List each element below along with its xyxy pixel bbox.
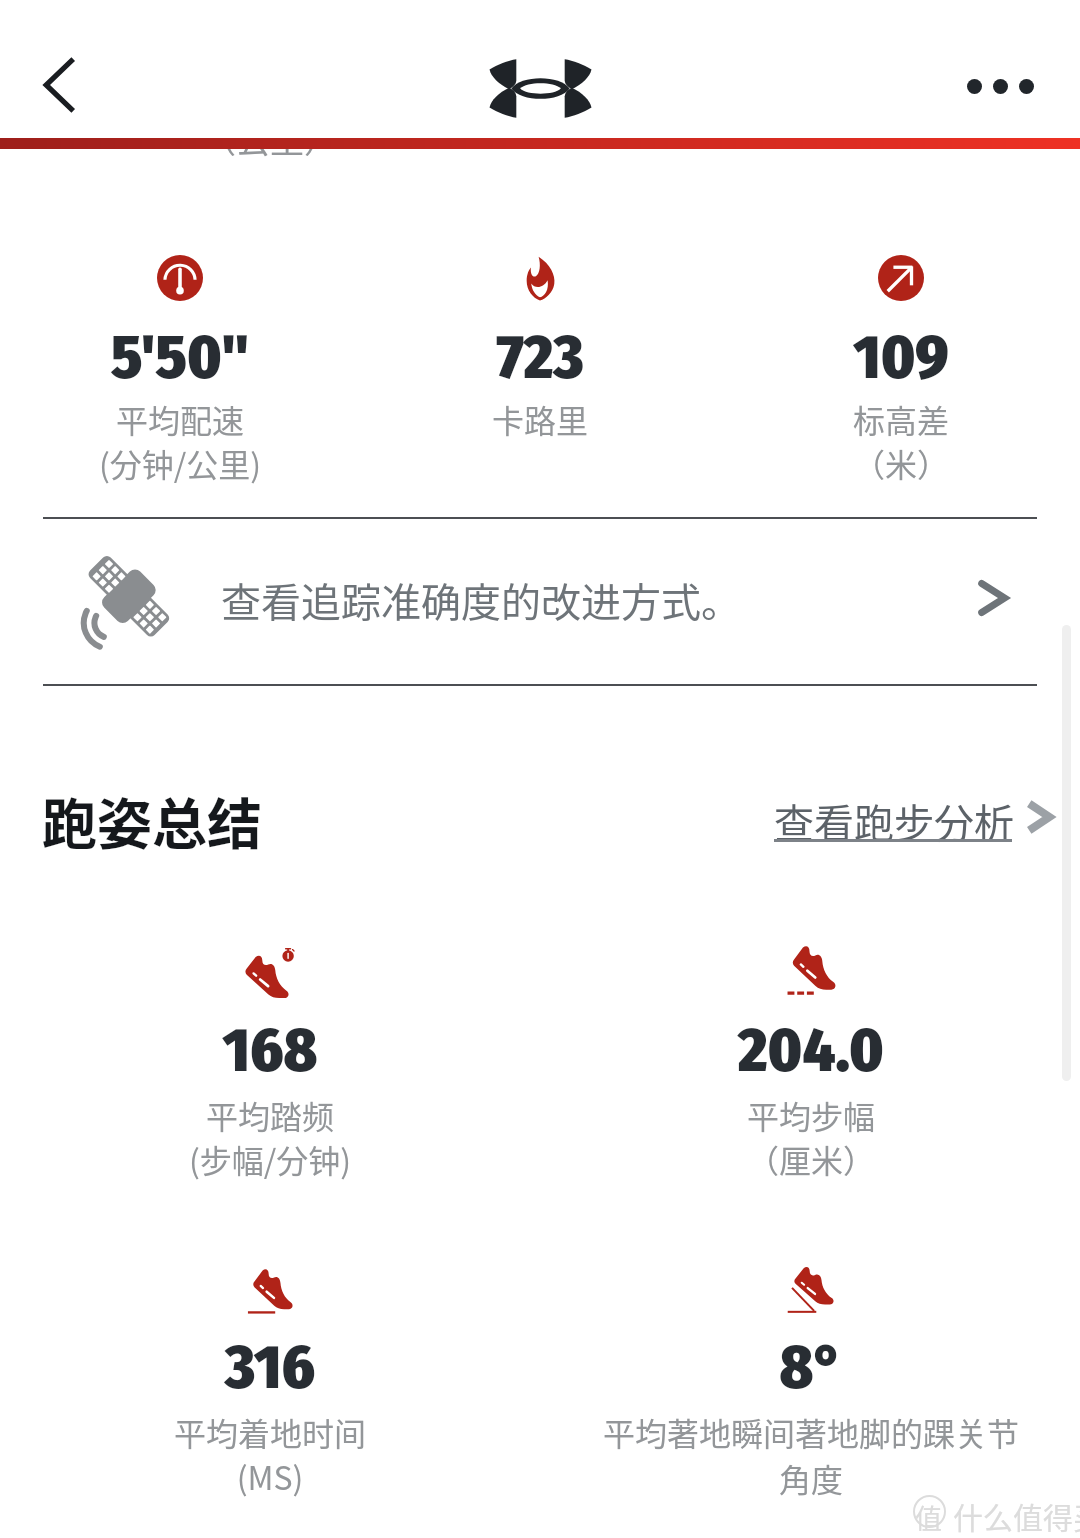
- staticText: （厘米）: [551, 1136, 1071, 1182]
- staticText: 平均着地时间: [40, 1409, 500, 1455]
- button[interactable]: Back: [18, 44, 102, 126]
- staticText: （米）: [641, 440, 1080, 486]
- staticText: 8°: [551, 1330, 1071, 1404]
- staticText: 查看追踪准确度的改进方式。: [221, 571, 741, 629]
- button[interactable]: 查看追踪准确度的改进方式。: [0, 519, 1080, 685]
- staticText: 标高差: [641, 396, 1080, 442]
- staticText: 109: [641, 320, 1080, 394]
- staticText: 查看跑步分析: [774, 792, 1014, 850]
- staticText: 什么值得买: [953, 1494, 1080, 1537]
- staticText: 5'50": [0, 320, 440, 394]
- staticText: 316: [10, 1330, 530, 1404]
- staticText: 跑姿总结: [42, 780, 263, 860]
- staticText: 卡路里: [280, 396, 800, 442]
- staticText: (分钟/公里): [0, 440, 440, 486]
- staticText: 平均踏频: [40, 1092, 500, 1138]
- staticText: （公里）: [202, 114, 338, 163]
- button[interactable]: More options: [946, 50, 1054, 122]
- staticText: 723: [280, 320, 800, 394]
- staticText: 平均步幅: [581, 1092, 1041, 1138]
- staticText: 平均著地瞬间著地脚的踝关节角度: [592, 1409, 1030, 1501]
- staticText: 168: [10, 1013, 530, 1087]
- staticText: 值: [915, 1498, 942, 1531]
- staticText: (步幅/分钟): [10, 1136, 530, 1182]
- staticText: 平均配速: [0, 396, 440, 442]
- staticText: (MS): [10, 1453, 530, 1499]
- staticText: 204.0: [551, 1013, 1071, 1087]
- button[interactable]: 查看跑步分析: [770, 786, 1058, 850]
